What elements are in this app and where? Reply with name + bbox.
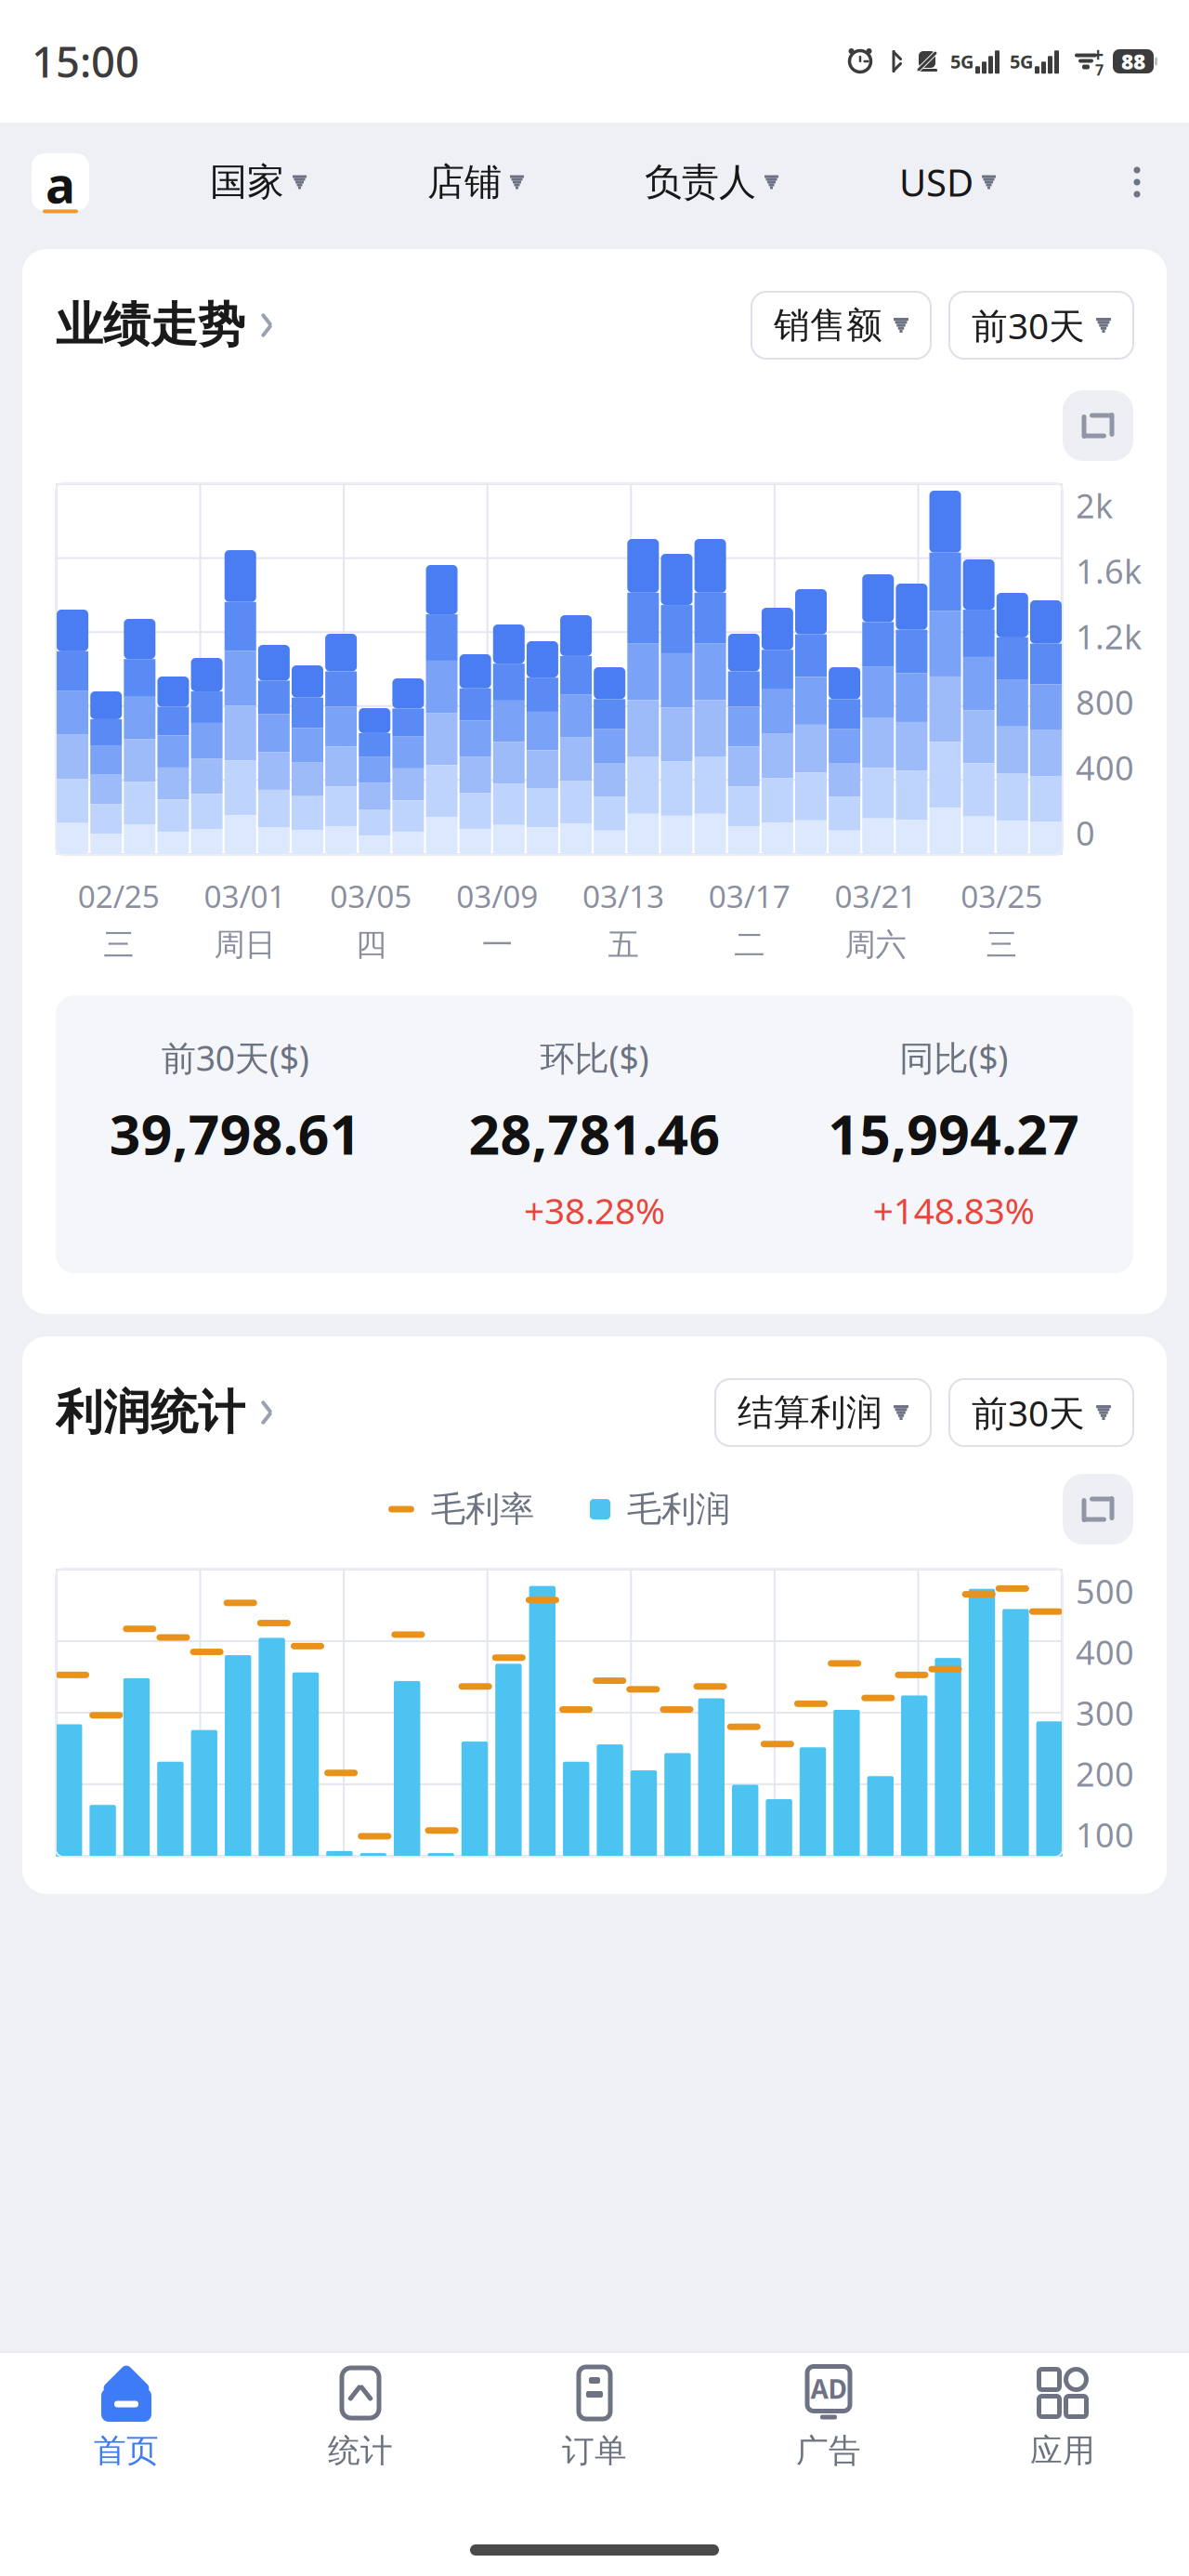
- staticText: 02/25: [78, 875, 160, 917]
- staticText: 300: [1076, 1690, 1134, 1735]
- staticText: 销售额: [774, 303, 882, 347]
- staticText: 前30天($): [161, 1034, 309, 1081]
- staticText: +: [1092, 41, 1104, 67]
- staticText: 28,781.46: [469, 1097, 720, 1170]
- staticText: 200: [1076, 1751, 1134, 1796]
- staticText: +38.28%: [524, 1186, 665, 1234]
- staticText: 前30天: [972, 1389, 1085, 1436]
- button[interactable]: Expand chart: [1063, 390, 1133, 461]
- staticText: 前30天: [972, 301, 1085, 349]
- staticText: 7: [1095, 60, 1104, 80]
- staticText: 88: [1121, 47, 1145, 75]
- staticText: 15:00: [32, 33, 139, 89]
- staticText: 业绩走势: [56, 296, 245, 354]
- staticText: 15,994.27: [828, 1097, 1080, 1170]
- staticText: 五: [608, 926, 639, 964]
- staticText: +148.83%: [873, 1186, 1035, 1234]
- button[interactable]: 负责人: [645, 152, 778, 212]
- button[interactable]: 首页: [9, 2353, 243, 2480]
- button[interactable]: USD: [899, 150, 996, 214]
- button[interactable]: 店铺: [427, 152, 524, 212]
- staticText: 1.6k: [1076, 549, 1142, 593]
- button[interactable]: 国家: [210, 152, 307, 212]
- staticText: 应用: [1030, 2431, 1095, 2471]
- button[interactable]: 前30天: [949, 292, 1133, 359]
- staticText: 广告: [796, 2431, 861, 2471]
- button[interactable]: 销售额: [751, 292, 931, 359]
- staticText: USD: [899, 157, 973, 207]
- button[interactable]: Amazon store: [32, 153, 89, 211]
- staticText: 三: [986, 926, 1017, 964]
- button[interactable]: 结算利润: [715, 1379, 931, 1446]
- staticText: 5G: [950, 49, 973, 74]
- button[interactable]: More options: [1117, 156, 1157, 208]
- staticText: 03/25: [961, 875, 1042, 917]
- staticText: 周日: [214, 926, 276, 964]
- button[interactable]: 利润统计: [56, 1384, 275, 1441]
- staticText: 环比($): [540, 1034, 649, 1081]
- staticText: 500: [1076, 1569, 1134, 1613]
- staticText: 利润统计: [56, 1384, 245, 1441]
- staticText: 四: [356, 926, 386, 964]
- staticText: 1.2k: [1076, 614, 1142, 659]
- staticText: 800: [1076, 680, 1134, 724]
- staticText: 统计: [328, 2431, 393, 2471]
- button[interactable]: 应用: [946, 2353, 1180, 2480]
- button[interactable]: 业绩走势: [56, 296, 275, 354]
- button[interactable]: 前30天: [949, 1379, 1133, 1446]
- staticText: 周六: [845, 926, 906, 964]
- staticText: 03/01: [204, 875, 286, 917]
- button[interactable]: AD: [712, 2353, 946, 2480]
- staticText: 一: [482, 926, 512, 964]
- staticText: 结算利润: [738, 1391, 882, 1435]
- staticText: 5G: [1010, 49, 1033, 74]
- staticText: 0: [1076, 811, 1095, 855]
- staticText: 同比($): [899, 1034, 1008, 1081]
- staticText: 订单: [562, 2431, 627, 2471]
- staticText: 03/21: [835, 875, 916, 917]
- staticText: 三: [103, 926, 134, 964]
- staticText: 店铺: [427, 159, 502, 205]
- staticText: 03/05: [330, 875, 412, 917]
- staticText: 03/09: [456, 875, 538, 917]
- staticText: 首页: [94, 2431, 159, 2471]
- staticText: a: [46, 151, 75, 217]
- staticText: 400: [1076, 1630, 1134, 1674]
- staticText: 03/17: [708, 875, 790, 917]
- staticText: 03/13: [582, 875, 664, 917]
- staticText: 毛利润: [627, 1488, 730, 1531]
- staticText: 二: [734, 926, 765, 964]
- staticText: 100: [1076, 1812, 1134, 1857]
- button[interactable]: Expand chart: [1063, 1474, 1133, 1544]
- staticText: AD: [810, 2371, 847, 2406]
- staticText: 国家: [210, 159, 284, 205]
- button[interactable]: 统计: [243, 2353, 477, 2480]
- staticText: 39,798.61: [109, 1097, 361, 1170]
- staticText: 2k: [1076, 483, 1113, 528]
- button[interactable]: 订单: [477, 2353, 712, 2480]
- staticText: 毛利率: [431, 1488, 534, 1531]
- staticText: 负责人: [645, 159, 756, 205]
- staticText: 400: [1076, 745, 1134, 790]
